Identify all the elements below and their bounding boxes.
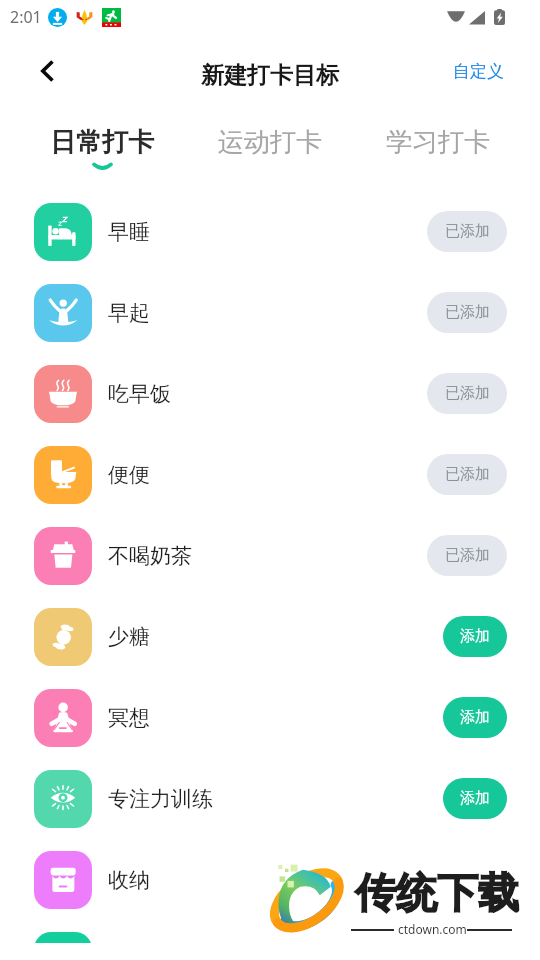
button[interactable]: 不喝奶茶 xyxy=(0,515,540,596)
staticText: 已添加 xyxy=(445,546,490,565)
button[interactable]: 吃早饭 xyxy=(0,353,540,434)
staticText: 早起 xyxy=(108,300,150,326)
staticText: 少糖 xyxy=(108,624,150,650)
button[interactable]: Back xyxy=(24,48,70,94)
staticText: 专注力训练 xyxy=(108,786,213,812)
button[interactable]: 早睡 xyxy=(0,191,540,272)
button[interactable]: 已添加 xyxy=(427,535,507,576)
staticText: 自定义 xyxy=(453,61,504,82)
staticText: 日常打卡 xyxy=(50,126,154,159)
staticText: 不喝奶茶 xyxy=(108,543,192,569)
button[interactable]: 添加 xyxy=(443,616,507,657)
button[interactable]: 喝水 xyxy=(0,920,540,960)
button[interactable]: 运动打卡 xyxy=(186,106,354,159)
staticText: 已添加 xyxy=(445,384,490,403)
staticText: 添加 xyxy=(460,789,490,808)
button[interactable]: 已添加 xyxy=(427,211,507,252)
button[interactable]: 已添加 xyxy=(427,292,507,333)
staticText: 学习打卡 xyxy=(386,126,490,159)
button[interactable]: 已添加 xyxy=(427,454,507,495)
staticText: 运动打卡 xyxy=(218,126,322,159)
staticText: 便便 xyxy=(108,462,150,488)
staticText: 早睡 xyxy=(108,219,150,245)
staticText: 已添加 xyxy=(445,465,490,484)
staticText: ctdown.com xyxy=(398,921,467,937)
button[interactable]: 自定义 xyxy=(447,56,510,87)
staticText: 新建打卡目标 xyxy=(201,61,339,90)
button[interactable]: 专注力训练 xyxy=(0,758,540,839)
staticText: 2:01 xyxy=(10,6,42,28)
button[interactable]: 冥想 xyxy=(0,677,540,758)
button[interactable]: 收纳 xyxy=(0,839,540,920)
staticText: 已添加 xyxy=(445,303,490,322)
button[interactable]: 早起 xyxy=(0,272,540,353)
button[interactable]: 少糖 xyxy=(0,596,540,677)
staticText: 添加 xyxy=(460,870,490,889)
button[interactable]: 已添加 xyxy=(427,373,507,414)
button[interactable]: 添加 xyxy=(443,697,507,738)
staticText: 添加 xyxy=(460,708,490,727)
staticText: 添加 xyxy=(460,627,490,646)
button[interactable]: 学习打卡 xyxy=(354,106,522,159)
button[interactable]: 添加 xyxy=(443,859,507,900)
button[interactable]: 便便 xyxy=(0,434,540,515)
staticText: 已添加 xyxy=(445,222,490,241)
button[interactable]: 日常打卡 xyxy=(18,106,186,171)
staticText: 吃早饭 xyxy=(108,381,171,407)
staticText: 收纳 xyxy=(108,867,150,893)
staticText: 传统下载 xyxy=(355,868,519,920)
staticText: 冥想 xyxy=(108,705,150,731)
button[interactable]: 添加 xyxy=(443,778,507,819)
